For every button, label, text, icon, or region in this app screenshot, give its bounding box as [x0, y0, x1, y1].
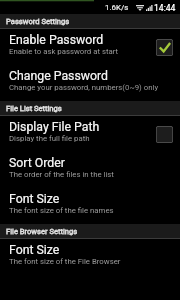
staticText: Change Password — [9, 69, 109, 83]
staticText: Display File Path — [9, 120, 100, 134]
staticText: Change your password, numbers(0~9) only — [9, 83, 159, 92]
button[interactable]: Enable Password — [0, 29, 180, 65]
staticText: Enable Password — [9, 33, 104, 47]
staticText: Enable to ask password at start — [9, 47, 119, 56]
staticText: Password Settings — [6, 17, 70, 26]
staticText: Sort Order — [9, 156, 65, 170]
staticText: Font Size — [9, 192, 60, 206]
staticText: Font Size — [9, 243, 60, 257]
button[interactable]: Font Size — [0, 188, 180, 224]
button[interactable]: Font Size — [0, 239, 180, 275]
staticText: 1.6K/s — [105, 3, 129, 12]
staticText: File Browser Settings — [6, 227, 78, 236]
staticText: The font size of the File Browser — [9, 257, 121, 266]
button[interactable]: Display File Path — [0, 116, 180, 152]
staticText: File List Settings — [6, 104, 62, 113]
button[interactable]: Disabled checkbox — [156, 126, 173, 143]
staticText: 14:44 — [154, 3, 176, 13]
button[interactable]: Enabled checkbox — [156, 39, 173, 56]
staticText: The order of the files in the list — [9, 170, 114, 179]
staticText: Display the full file path — [9, 134, 90, 143]
staticText: The font size of the file names — [9, 206, 114, 215]
button[interactable]: Sort Order — [0, 152, 180, 188]
button[interactable]: Change Password — [0, 65, 180, 101]
